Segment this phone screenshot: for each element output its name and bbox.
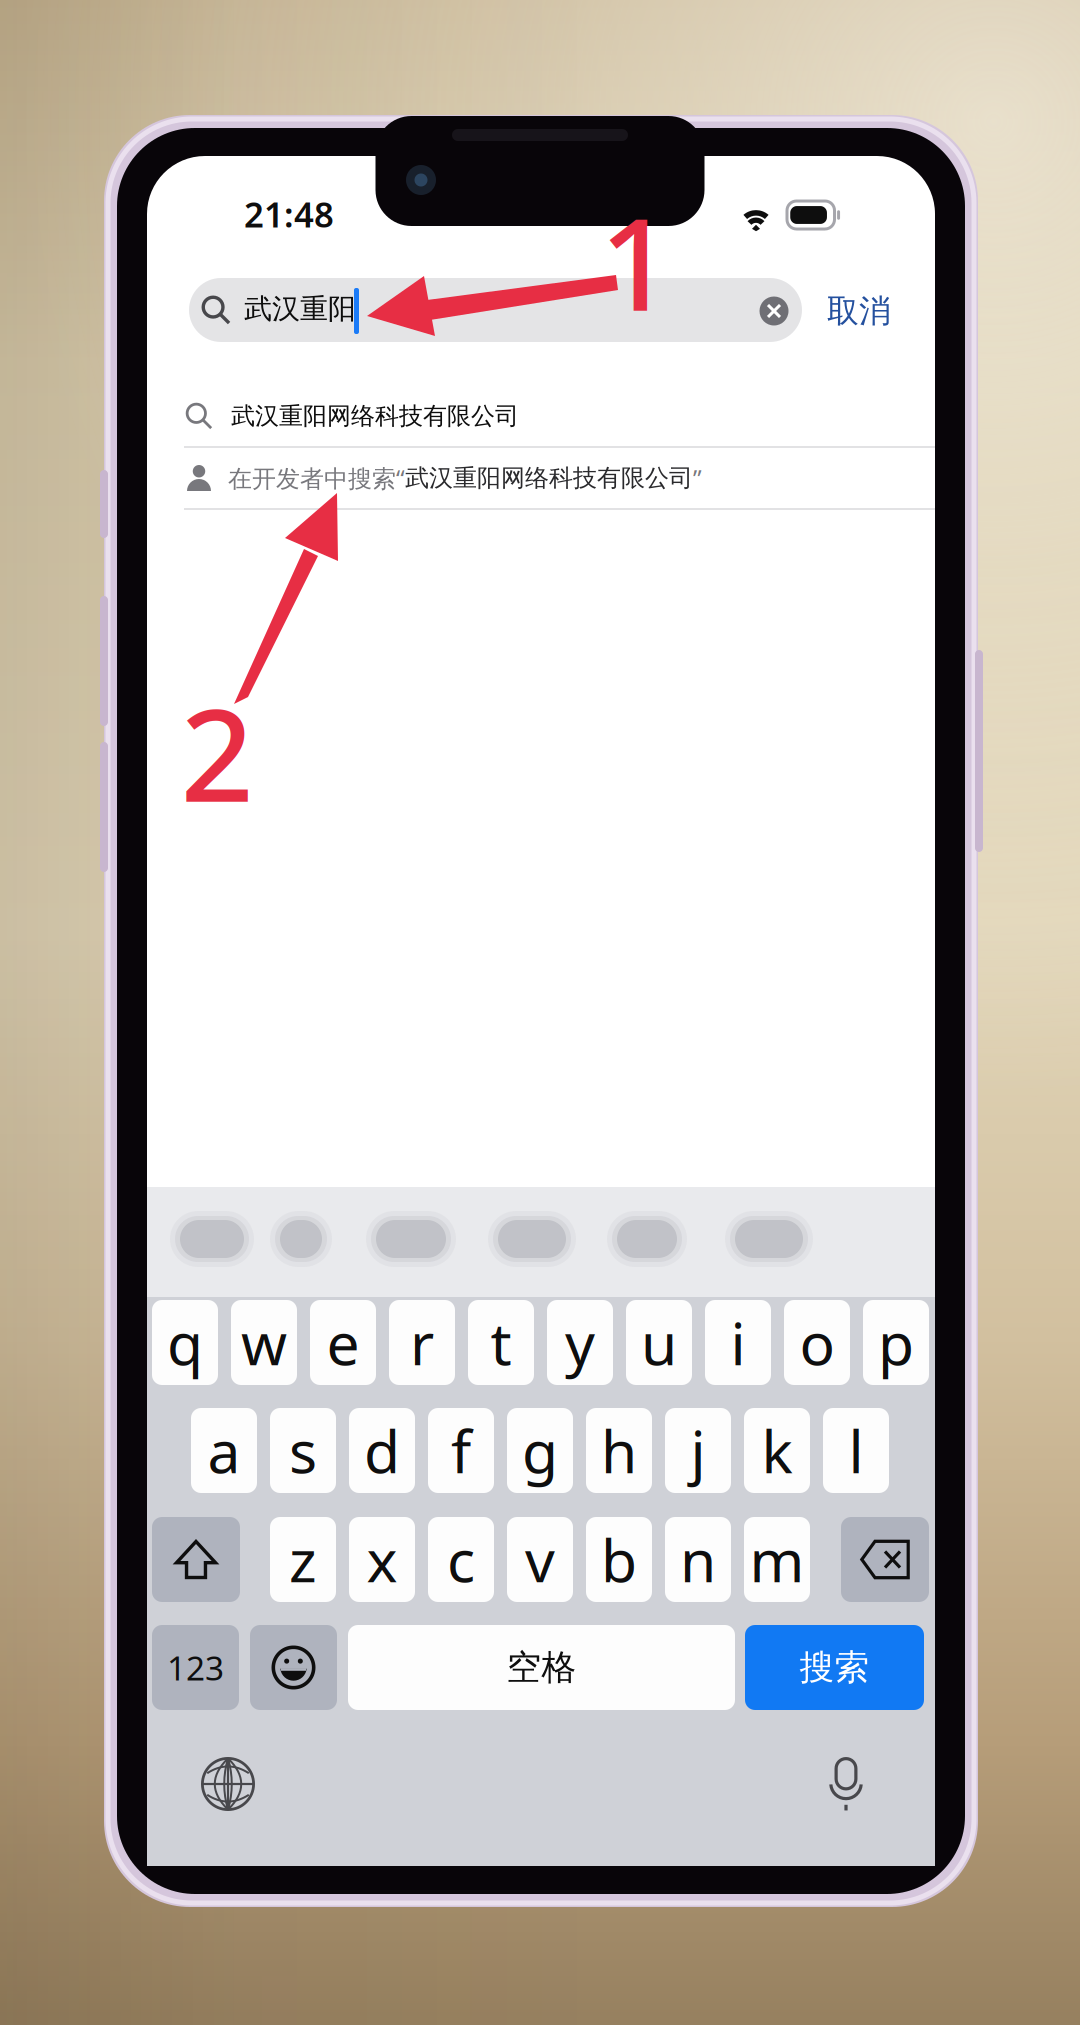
button[interactable]: Dictate bbox=[827, 1757, 865, 1811]
staticText: f bbox=[451, 1411, 471, 1489]
staticText: y bbox=[565, 1303, 595, 1381]
staticText: 武汉重阳网络科技有限公司 bbox=[405, 463, 693, 493]
button[interactable]: b bbox=[586, 1517, 652, 1602]
button[interactable]: o bbox=[784, 1300, 850, 1385]
staticText: h bbox=[601, 1411, 637, 1489]
button[interactable]: l bbox=[823, 1408, 889, 1493]
staticText: c bbox=[447, 1520, 475, 1598]
button[interactable]: x bbox=[349, 1517, 415, 1602]
button[interactable]: g bbox=[507, 1408, 573, 1493]
staticText: 空格 bbox=[506, 1646, 576, 1689]
button[interactable]: n bbox=[665, 1517, 731, 1602]
button[interactable]: u bbox=[626, 1300, 692, 1385]
staticText: r bbox=[410, 1303, 434, 1381]
button[interactable]: s bbox=[270, 1408, 336, 1493]
button[interactable]: Shift bbox=[152, 1517, 240, 1602]
button[interactable]: a bbox=[191, 1408, 257, 1493]
staticText: a bbox=[207, 1411, 240, 1489]
staticText: t bbox=[490, 1303, 511, 1381]
button[interactable]: Emoji bbox=[250, 1625, 337, 1710]
staticText: o bbox=[799, 1303, 834, 1381]
button[interactable]: 123 bbox=[152, 1625, 239, 1710]
staticText: k bbox=[761, 1411, 792, 1489]
staticText: j bbox=[690, 1411, 705, 1489]
staticText: n bbox=[680, 1520, 716, 1598]
button[interactable]: q bbox=[152, 1300, 218, 1385]
button[interactable]: t bbox=[468, 1300, 534, 1385]
button[interactable]: 在开发者中搜索“ bbox=[147, 449, 935, 507]
staticText: z bbox=[289, 1520, 317, 1598]
staticText: ” bbox=[693, 462, 702, 494]
staticText: 武汉重阳 bbox=[244, 292, 356, 326]
staticText: 取消 bbox=[827, 291, 891, 331]
button[interactable]: m bbox=[744, 1517, 810, 1602]
staticText: 搜索 bbox=[799, 1646, 869, 1689]
staticText: x bbox=[366, 1520, 397, 1598]
staticText: 在开发者中搜索“ bbox=[228, 462, 405, 494]
button[interactable]: p bbox=[863, 1300, 929, 1385]
button[interactable]: Switch keyboard bbox=[201, 1757, 255, 1811]
staticText: i bbox=[730, 1303, 745, 1381]
button[interactable]: 搜索 bbox=[745, 1625, 924, 1710]
button[interactable]: d bbox=[349, 1408, 415, 1493]
button[interactable]: c bbox=[428, 1517, 494, 1602]
staticText: 21:48 bbox=[244, 191, 334, 237]
staticText: 2 bbox=[180, 667, 253, 837]
button[interactable]: Delete bbox=[841, 1517, 929, 1602]
button[interactable]: v bbox=[507, 1517, 573, 1602]
button[interactable]: i bbox=[705, 1300, 771, 1385]
staticText: d bbox=[364, 1411, 400, 1489]
button[interactable]: 空格 bbox=[348, 1625, 735, 1710]
button[interactable]: r bbox=[389, 1300, 455, 1385]
button[interactable]: h bbox=[586, 1408, 652, 1493]
staticText: g bbox=[522, 1411, 558, 1489]
staticText: u bbox=[641, 1303, 677, 1381]
button[interactable]: w bbox=[231, 1300, 297, 1385]
button[interactable]: 武汉重阳网络科技有限公司 bbox=[147, 387, 935, 445]
button[interactable]: z bbox=[270, 1517, 336, 1602]
staticText: s bbox=[289, 1411, 317, 1489]
button[interactable]: j bbox=[665, 1408, 731, 1493]
staticText: e bbox=[326, 1303, 359, 1381]
staticText: 123 bbox=[167, 1645, 224, 1690]
button[interactable]: k bbox=[744, 1408, 810, 1493]
staticText: 武汉重阳网络科技有限公司 bbox=[231, 401, 519, 431]
button[interactable]: f bbox=[428, 1408, 494, 1493]
staticText: v bbox=[525, 1520, 555, 1598]
staticText: q bbox=[167, 1303, 203, 1381]
button[interactable]: 武汉重阳 bbox=[189, 278, 802, 342]
button[interactable]: 取消 bbox=[827, 291, 891, 331]
button[interactable]: e bbox=[310, 1300, 376, 1385]
staticText: b bbox=[601, 1520, 637, 1598]
staticText: 1 bbox=[599, 176, 672, 346]
button[interactable]: y bbox=[547, 1300, 613, 1385]
button[interactable]: Clear text bbox=[759, 296, 788, 325]
staticText: w bbox=[241, 1303, 287, 1381]
staticText: p bbox=[878, 1303, 914, 1381]
staticText: m bbox=[749, 1520, 804, 1598]
staticText: l bbox=[848, 1411, 863, 1489]
